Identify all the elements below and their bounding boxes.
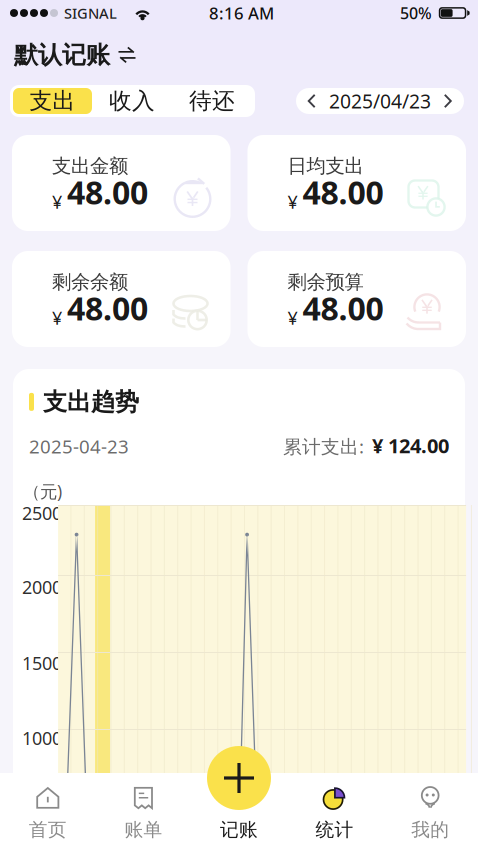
button[interactable]: Next day [432,88,464,114]
staticText: 48.00 [302,170,383,214]
staticText: 48.00 [67,286,148,330]
staticText: ¥ [287,305,297,330]
staticText: 50% [400,2,432,24]
staticText: 支出 [29,87,75,115]
staticText: 48.00 [67,170,148,214]
staticText: 默认记账 [14,40,110,70]
button[interactable]: Previous day [296,88,328,114]
button[interactable]: 剩余预算 [247,251,466,347]
button[interactable]: 收入 [92,88,172,114]
staticText: 2500 [22,501,62,525]
staticText: （元) [23,479,62,503]
button[interactable]: 待还 [172,88,252,114]
staticText: 8:16 AM [209,2,274,24]
staticText: 待还 [189,87,235,115]
button[interactable]: 账单 [96,773,191,850]
staticText: 账单 [124,818,162,841]
button[interactable]: 统计 [287,773,382,850]
staticText: SIGNAL [64,3,117,23]
staticText: 支出趋势 [43,387,139,417]
button[interactable]: 默认记账 [0,26,146,70]
button[interactable]: 日均支出 [247,135,466,231]
staticText: 我的 [411,818,449,841]
staticText: ¥ [287,189,297,214]
button[interactable]: 首页 [0,773,96,850]
button[interactable]: 支出金额 [12,135,230,231]
staticText: 剩余余额 [52,270,128,294]
staticText: 1500 [22,651,62,675]
staticText: ¥ [52,189,62,214]
staticText: 支出金额 [52,154,128,178]
staticText: 记账 [220,818,258,841]
staticText: 2025-04-23 [29,434,129,459]
staticText: 首页 [29,818,67,841]
staticText: 统计 [316,818,354,841]
staticText: 剩余预算 [287,270,363,294]
staticText: 2000 [22,575,62,599]
button[interactable]: 剩余余额 [12,251,230,347]
staticText: 48.00 [302,286,383,330]
button[interactable]: 记账 [191,773,287,850]
staticText: 1000 [22,726,62,750]
staticText: 2025/04/23 [329,88,431,114]
button[interactable]: 记账 [207,746,271,810]
button[interactable]: 我的 [382,773,478,850]
staticText: 收入 [109,87,155,115]
staticText: 累计支出: [283,434,364,459]
button[interactable]: 支出 [13,88,92,114]
staticText: ¥ 124.00 [372,432,449,459]
staticText: 日均支出 [287,154,363,178]
staticText: ¥ [52,305,62,330]
